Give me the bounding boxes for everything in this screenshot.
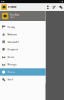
staticText: Search bbox=[7, 78, 13, 81]
staticText: Participated bbox=[7, 48, 17, 51]
staticText: PirateRadio bbox=[10, 14, 19, 16]
staticText: Messages bbox=[7, 63, 16, 66]
button[interactable]: Account bbox=[45, 3, 51, 11]
button[interactable]: Search bbox=[58, 3, 64, 11]
button[interactable]: Sort bbox=[51, 3, 58, 11]
button[interactable]: Notifications bbox=[0, 31, 45, 38]
staticText: Pursuing bbox=[7, 26, 14, 28]
staticText: Subscribed (1) bbox=[7, 41, 19, 43]
button[interactable]: Messages bbox=[0, 61, 45, 68]
staticText: 3:41 bbox=[59, 1, 61, 2]
button[interactable]: Subscribed (1) bbox=[0, 38, 45, 46]
staticText: Browse bbox=[8, 6, 16, 8]
staticText: Unread bbox=[7, 56, 13, 58]
button[interactable]: Pursuing bbox=[0, 23, 45, 31]
staticText: Global bbox=[10, 16, 14, 18]
staticText: Browse bbox=[7, 71, 14, 73]
staticText: Notifications bbox=[7, 33, 17, 36]
button[interactable]: Unread bbox=[0, 53, 45, 61]
button[interactable]: Open navigation menu bbox=[0, 3, 8, 11]
button[interactable]: Search bbox=[0, 76, 45, 83]
button[interactable]: Browse bbox=[0, 68, 45, 76]
button[interactable]: Participated bbox=[0, 46, 45, 53]
button[interactable]: PirateRadio bbox=[0, 11, 45, 21]
